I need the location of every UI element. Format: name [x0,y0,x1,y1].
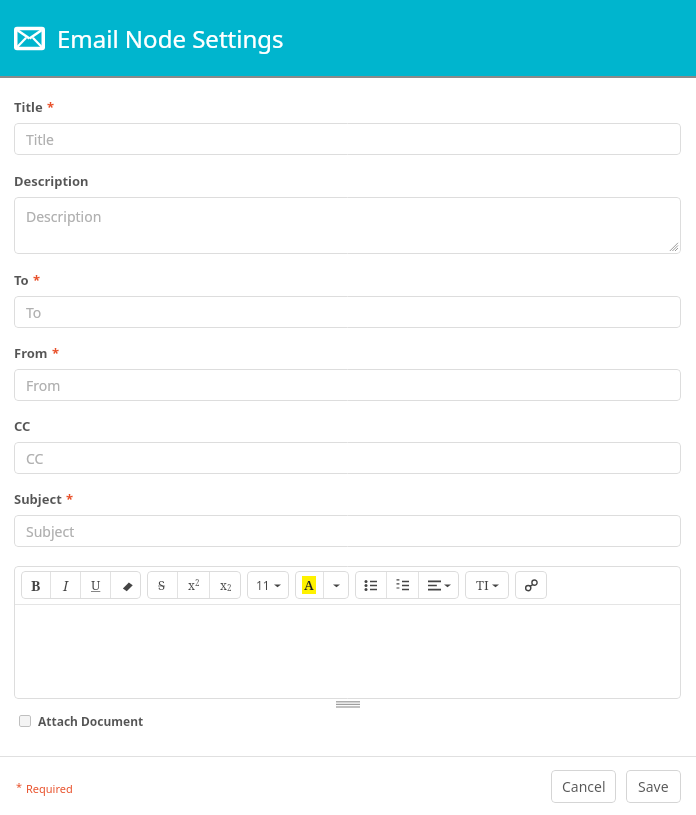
button[interactable]: Subscript [210,571,241,599]
staticText: S [158,576,166,594]
button[interactable]: Attach Document [19,713,144,729]
button[interactable]: From [14,369,681,401]
button[interactable]: Paragraph style [465,571,509,599]
button[interactable]: Underline [81,571,110,599]
staticText: Save [638,777,669,796]
staticText: Title [26,130,54,149]
button[interactable]: Bold [21,571,50,599]
button[interactable]: Numbered list [387,571,418,599]
staticText: Subject [14,490,62,508]
staticText: A [304,576,314,594]
staticText: Cancel [562,777,606,796]
staticText: Required [26,781,73,796]
other: Email [14,23,45,54]
staticText: TI [476,576,489,594]
staticText: From [26,376,61,395]
button[interactable]: Bulleted list [355,571,386,599]
staticText: * [47,98,55,116]
staticText: I [63,576,69,595]
staticText: * [66,490,74,508]
button[interactable]: Italic [51,571,80,599]
staticText: Description [26,207,102,226]
staticText: Description [14,172,89,190]
staticText: * [52,344,60,362]
button[interactable]: Save [626,770,681,803]
button[interactable]: Strikethrough [147,571,177,599]
staticText: Subject [26,522,75,541]
staticText: Attach Document [38,713,144,729]
button[interactable]: Choose highlight color [324,571,349,599]
staticText: * [16,779,23,794]
staticText: 11 [256,577,270,593]
button[interactable]: Alignment [419,571,459,599]
staticText: Email Node Settings [57,22,284,55]
button[interactable]: Description [14,197,681,254]
staticText: Title [14,98,43,116]
staticText: x [220,577,227,593]
button[interactable]: CC [14,442,681,474]
button[interactable]: Superscript [178,571,209,599]
button[interactable]: Subject [14,515,681,547]
staticText: U [91,576,101,594]
staticText: To [26,303,42,322]
staticText: From [14,344,48,362]
button[interactable]: Cancel [551,770,616,803]
button[interactable]: Text highlight color [295,571,323,599]
button[interactable]: Font size [247,571,289,599]
button[interactable]: Clear formatting [111,571,141,599]
other: Resize editor [336,701,360,708]
staticText: 2 [227,582,232,593]
staticText: B [31,576,41,595]
staticText: 2 [195,577,200,588]
button[interactable]: Insert link [515,571,547,599]
staticText: * [33,271,41,289]
staticText: x [188,577,195,593]
button[interactable]: Title [14,123,681,155]
staticText: To [14,271,29,289]
staticText: CC [14,417,31,435]
staticText: CC [26,449,44,468]
button[interactable]: To [14,296,681,328]
